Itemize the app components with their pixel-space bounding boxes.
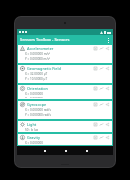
button[interactable]: Gravity [18, 134, 112, 145]
button[interactable]: Details [93, 122, 98, 127]
staticText: Y = 0.000000 rad/s [25, 113, 51, 117]
button[interactable]: Gyroscope [18, 101, 112, 119]
button[interactable]: Share [105, 102, 110, 107]
button[interactable]: Orientation [18, 85, 112, 99]
staticText: Accelerometer [27, 46, 93, 51]
button[interactable]: Share [105, 135, 110, 140]
button[interactable]: Details [93, 86, 98, 91]
button[interactable]: Graph [99, 135, 104, 140]
staticText: Gravity [27, 135, 93, 140]
button[interactable]: Details [93, 102, 98, 107]
button[interactable]: Home [64, 149, 67, 152]
button[interactable]: Light [18, 121, 112, 132]
staticText: Y = 10.50000 µT [25, 77, 48, 81]
button[interactable]: Details [93, 135, 98, 140]
button[interactable]: More options [105, 37, 111, 43]
button[interactable]: Graph [99, 86, 104, 91]
staticText: Orientation [27, 86, 93, 91]
button[interactable]: Details [93, 66, 98, 71]
button[interactable]: Accelerometer [18, 45, 112, 63]
button[interactable]: Graph [99, 102, 104, 107]
button[interactable]: Geomagnetic Field [18, 65, 112, 83]
button[interactable]: Graph [99, 66, 104, 71]
staticText: Y = 0.000000 m/s² [25, 57, 50, 61]
staticText: X = 0.000000 m/s² [25, 52, 51, 56]
button[interactable]: Recent apps [85, 149, 88, 152]
button[interactable]: Details [93, 46, 98, 51]
button[interactable]: Graph [99, 46, 104, 51]
staticText: Geomagnetic Field [27, 66, 93, 71]
staticText: Y = 0.000000 [25, 97, 43, 98]
staticText: X = 0.000000 rad/s [25, 108, 51, 112]
staticText: X = 0.000000 [25, 92, 43, 96]
staticText: Gyroscope [27, 102, 93, 107]
staticText: X = 32.00000 µT [25, 72, 48, 76]
button[interactable]: Graph [99, 122, 104, 127]
staticText: X = 0.000000 [25, 141, 43, 144]
staticText: Light [27, 122, 93, 127]
button[interactable]: Share [105, 46, 110, 51]
staticText: Sensors Toolbox - Sensors [20, 37, 70, 42]
staticText: 50 : lx lux [25, 128, 39, 131]
button[interactable]: Share [105, 86, 110, 91]
button[interactable]: Share [105, 66, 110, 71]
button[interactable]: Share [105, 122, 110, 127]
button[interactable]: Back [43, 149, 46, 152]
